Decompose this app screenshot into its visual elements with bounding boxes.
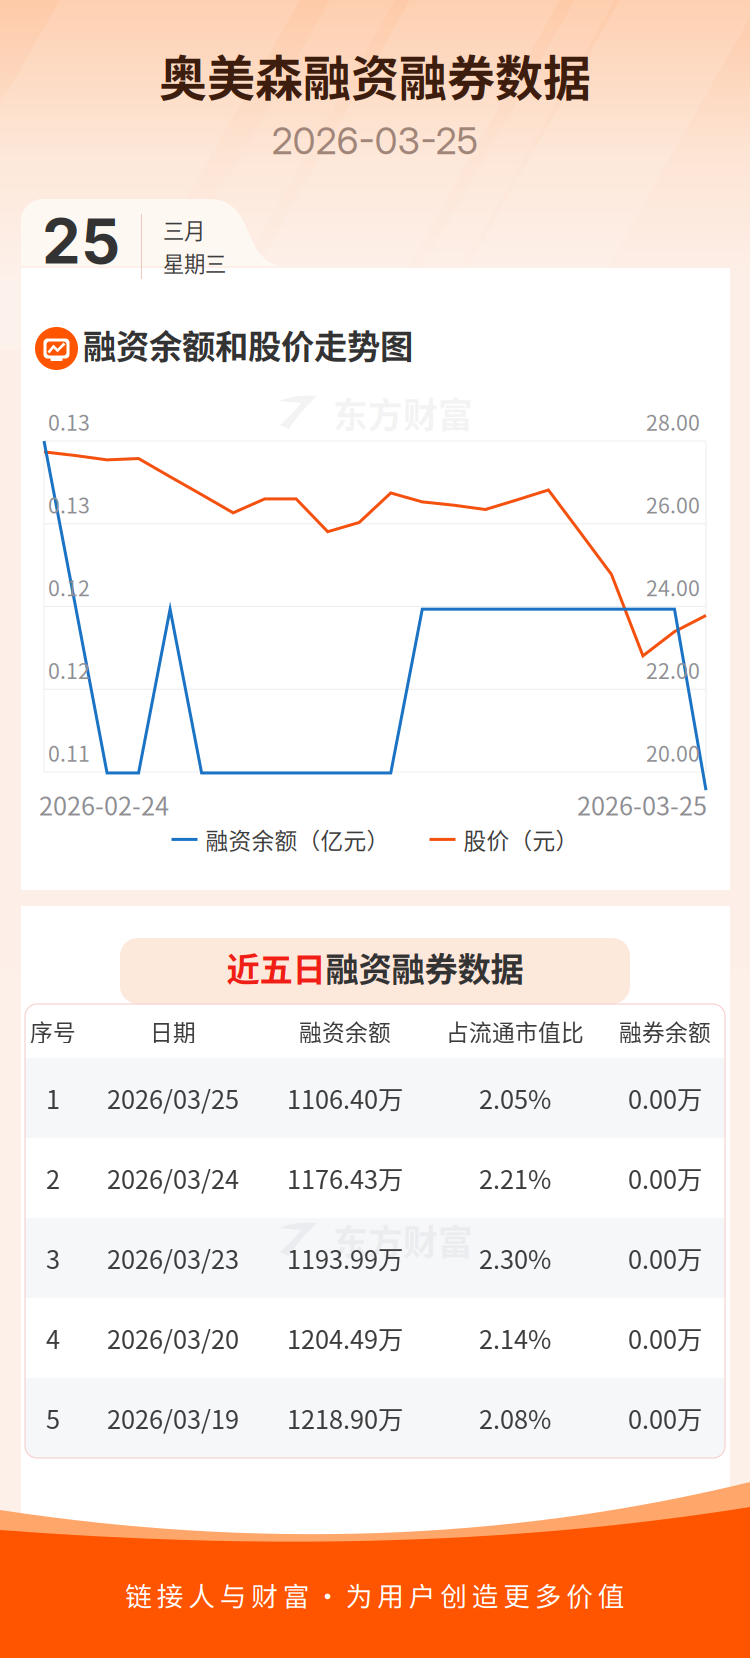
staticText: 2026/03/25: [107, 1080, 239, 1116]
staticText: 25: [42, 204, 120, 278]
staticText: 2026-03-25: [271, 118, 478, 163]
staticText: 22.00: [646, 654, 700, 685]
staticText: 2: [46, 1160, 60, 1196]
staticText: 0.11: [48, 737, 90, 768]
staticText: 2.30%: [479, 1240, 551, 1276]
staticText: 1106.40万: [287, 1080, 403, 1116]
staticText: 2026/03/19: [107, 1400, 239, 1436]
staticText: 序号: [30, 1015, 76, 1047]
staticText: 1204.49万: [287, 1320, 403, 1356]
staticText: 近五日: [226, 943, 325, 991]
staticText: 日期: [150, 1015, 196, 1047]
staticText: 2026-03-25: [577, 786, 707, 823]
staticText: 0.12: [48, 654, 90, 685]
staticText: 2026/03/23: [107, 1240, 239, 1276]
staticText: 2026-02-24: [39, 786, 169, 823]
staticText: 2.14%: [479, 1320, 551, 1356]
staticText: 24.00: [646, 572, 700, 602]
staticText: 2026/03/24: [107, 1160, 239, 1196]
staticText: 链接人与财富·为用户创造更多价值: [125, 1575, 625, 1614]
staticText: 1193.99万: [287, 1240, 403, 1276]
staticText: 0.00万: [628, 1240, 702, 1276]
staticText: 三月: [163, 214, 205, 245]
staticText: 融资余额和股价走势图: [83, 320, 413, 368]
staticText: 0.00万: [628, 1160, 702, 1196]
staticText: 2.05%: [479, 1080, 551, 1116]
staticText: 2026/03/20: [107, 1320, 239, 1356]
staticText: 4: [46, 1320, 60, 1356]
staticText: 融券余额: [619, 1015, 711, 1047]
staticText: 奥美森融资融券数据: [159, 40, 591, 109]
staticText: 2.21%: [479, 1160, 551, 1196]
staticText: 0.12: [48, 572, 90, 602]
staticText: 占流通市值比: [446, 1015, 584, 1047]
staticText: 0.13: [48, 489, 90, 520]
staticText: 0.00万: [628, 1320, 702, 1356]
staticText: 股价（元）: [463, 823, 578, 856]
staticText: 融资余额（亿元）: [205, 823, 389, 856]
staticText: 26.00: [646, 489, 700, 520]
staticText: 融资融券数据: [325, 943, 523, 991]
staticText: 3: [46, 1240, 60, 1276]
staticText: 28.00: [646, 406, 700, 437]
staticText: 融资余额: [299, 1015, 391, 1047]
staticText: 1: [46, 1080, 60, 1116]
staticText: 星期三: [163, 247, 226, 278]
staticText: 20.00: [646, 737, 700, 768]
staticText: 0.00万: [628, 1400, 702, 1436]
staticText: 1218.90万: [287, 1400, 403, 1436]
staticText: 东方财富: [333, 1215, 473, 1265]
staticText: 1176.43万: [287, 1160, 403, 1196]
staticText: 5: [46, 1400, 60, 1436]
staticText: 东方财富: [333, 388, 473, 438]
staticText: 0.00万: [628, 1080, 702, 1116]
staticText: 2.08%: [479, 1400, 551, 1436]
staticText: 0.13: [48, 406, 90, 437]
